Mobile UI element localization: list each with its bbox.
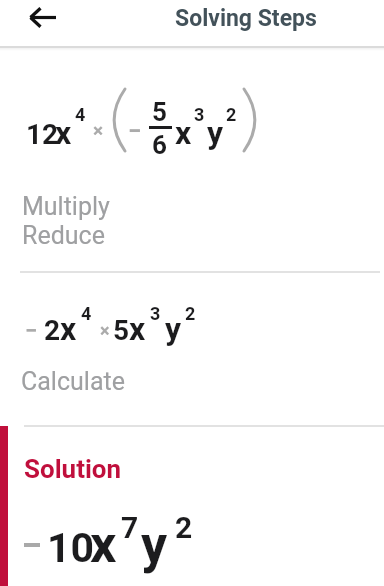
staticText: x: [60, 310, 77, 348]
staticText: y: [165, 310, 182, 348]
staticText: 5: [152, 97, 167, 127]
staticText: y: [141, 514, 168, 575]
staticText: x: [55, 114, 72, 152]
staticText: Solving Steps: [175, 5, 317, 32]
staticText: 2: [185, 303, 196, 324]
staticText: 6: [152, 130, 167, 160]
staticText: 4: [81, 303, 92, 324]
staticText: 12: [26, 118, 59, 151]
staticText: −: [25, 318, 38, 344]
button[interactable]: [0, 60, 384, 270]
staticText: −: [128, 117, 142, 145]
button[interactable]: [0, 280, 384, 420]
staticText: 5: [113, 314, 130, 347]
staticText: 10: [47, 524, 95, 572]
staticText: x: [175, 114, 192, 152]
staticText: y: [207, 114, 224, 152]
staticText: Calculate: [21, 367, 125, 396]
staticText: ×: [93, 119, 104, 141]
staticText: ×: [100, 320, 110, 341]
staticText: Solution: [24, 454, 122, 484]
button[interactable]: [8, 426, 384, 586]
staticText: 2: [44, 314, 61, 347]
button[interactable]: [16, 0, 68, 46]
staticText: 3: [150, 303, 161, 324]
staticText: 4: [75, 104, 86, 125]
staticText: x: [129, 310, 146, 348]
staticText: 2: [226, 104, 237, 125]
staticText: Multiply: [22, 192, 110, 221]
staticText: x: [90, 514, 117, 575]
staticText: 2: [175, 510, 193, 545]
staticText: 7: [121, 510, 139, 545]
staticText: Reduce: [22, 221, 105, 250]
staticText: 3: [194, 104, 205, 125]
